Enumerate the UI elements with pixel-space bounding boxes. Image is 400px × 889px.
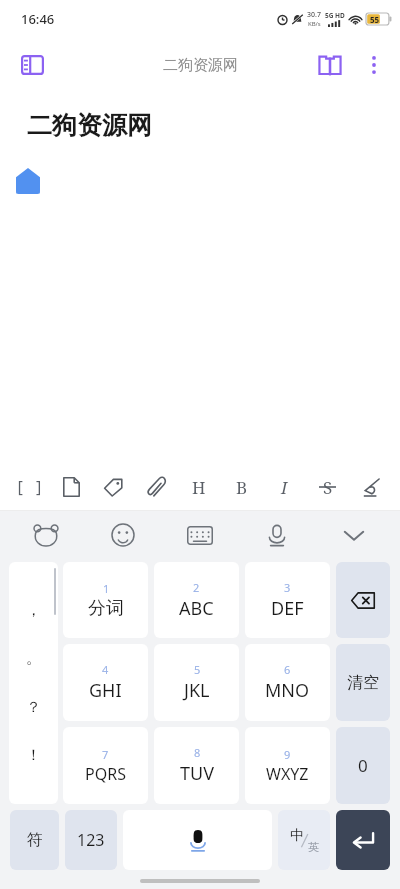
staticText: 符 [27, 830, 43, 850]
staticText: WXYZ [266, 763, 309, 785]
staticText: 123 [77, 829, 105, 851]
button[interactable]: mic [238, 511, 315, 559]
staticText: DEF [271, 596, 304, 621]
button[interactable]: Toggle sidebar [10, 43, 54, 87]
button[interactable]: More options [352, 43, 396, 87]
staticText: KB/s [308, 20, 321, 28]
button[interactable]: brackets [8, 464, 50, 510]
button[interactable]: Enter [336, 810, 390, 870]
staticText: MNO [265, 678, 310, 703]
button[interactable]: I [263, 464, 306, 510]
button[interactable]: du [8, 511, 84, 559]
staticText: TUV [180, 761, 214, 786]
staticText: 3 [284, 580, 291, 595]
staticText: 55 [370, 14, 380, 25]
button[interactable]: S [306, 464, 349, 510]
button[interactable]: 6 [245, 644, 330, 721]
button[interactable]: 中 [278, 810, 330, 870]
staticText: 9 [284, 747, 291, 762]
button[interactable]: H [177, 464, 220, 510]
button[interactable]: 3 [245, 562, 330, 638]
staticText: PQRS [85, 763, 126, 785]
button[interactable]: emoji [84, 511, 161, 559]
button[interactable]: 7 [63, 727, 148, 804]
staticText: H [192, 476, 206, 499]
staticText: 5G [325, 11, 334, 20]
staticText: 7 [102, 747, 109, 762]
button[interactable]: clip [134, 464, 177, 510]
button[interactable]: 5 [154, 644, 239, 721]
staticText: ？ [26, 698, 41, 717]
staticText: 分词 [88, 597, 124, 620]
staticText: 5 [194, 662, 201, 677]
staticText: 8 [194, 745, 201, 760]
button[interactable]: B [220, 464, 263, 510]
staticText: 30.7 [307, 10, 321, 20]
staticText: [ ] [15, 476, 44, 498]
button[interactable]: Reading mode [308, 43, 352, 87]
button[interactable]: tag [92, 464, 134, 510]
staticText: I [281, 476, 288, 499]
button[interactable]: 8 [154, 727, 239, 804]
staticText: 。 [26, 649, 41, 668]
staticText: 英 [308, 840, 319, 854]
staticText: ， [26, 601, 41, 620]
button[interactable]: 4 [63, 644, 148, 721]
button[interactable]: 清空 [336, 644, 390, 721]
staticText: 0 [358, 754, 368, 777]
staticText: ABC [179, 596, 214, 621]
button[interactable]: pen [349, 464, 392, 510]
staticText: GHI [89, 678, 122, 703]
button[interactable]: Voice input [123, 810, 272, 870]
staticText: 2 [193, 580, 200, 595]
button[interactable]: Delete [336, 562, 390, 638]
button[interactable]: 2 [154, 562, 239, 638]
staticText: 4 [102, 662, 109, 677]
button[interactable]: 符 [10, 810, 59, 870]
staticText: B [236, 476, 248, 499]
staticText: 二狗资源网 [27, 110, 152, 141]
button[interactable]: 9 [245, 727, 330, 804]
button[interactable]: ， [9, 562, 58, 804]
staticText: JKL [184, 678, 210, 703]
button[interactable]: file [50, 464, 92, 510]
staticText: 二狗资源网 [163, 56, 238, 75]
button[interactable]: 0 [336, 727, 390, 804]
button[interactable]: 1 [63, 562, 148, 638]
staticText: 6 [284, 662, 291, 677]
button[interactable]: keyboard [161, 511, 238, 559]
staticText: 清空 [347, 673, 379, 693]
button[interactable]: collapse [315, 511, 392, 559]
staticText: S [323, 476, 333, 499]
staticText: 16:46 [21, 10, 55, 28]
staticText: 中 [290, 827, 304, 845]
button[interactable]: 123 [65, 810, 117, 870]
staticText: HD [335, 11, 345, 20]
staticText: ！ [26, 746, 41, 765]
staticText: 1 [103, 581, 110, 596]
